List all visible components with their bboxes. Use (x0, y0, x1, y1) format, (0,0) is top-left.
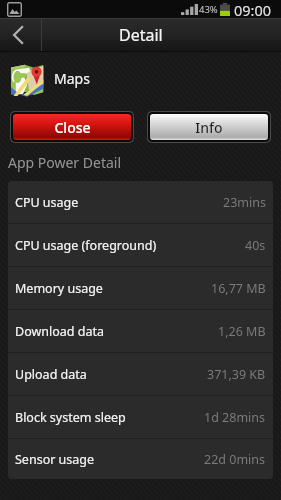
staticText: Sensor usage (15, 451, 95, 468)
button[interactable]: Info (150, 114, 268, 140)
staticText: Block system sleep (15, 409, 126, 426)
staticText: 16,77 MB (211, 280, 266, 297)
button[interactable]: Close (13, 114, 131, 140)
staticText: 09:00 (234, 0, 272, 18)
button[interactable]: Maps (0, 52, 281, 105)
button[interactable]: Sensor usage (8, 439, 273, 479)
button[interactable]: Memory usage (8, 267, 273, 310)
staticText: 43% (199, 3, 218, 16)
button[interactable]: CPU usage (8, 181, 273, 224)
staticText: Maps (54, 69, 90, 88)
button[interactable]: Download data (8, 310, 273, 353)
staticText: 40s (245, 237, 266, 254)
staticText: 371,39 KB (207, 366, 266, 383)
staticText: CPU usage (foreground) (15, 237, 157, 254)
staticText: 22d 0mins (204, 451, 266, 468)
staticText: Upload data (15, 366, 87, 383)
staticText: 1d 28mins (204, 409, 266, 426)
staticText: Memory usage (15, 280, 103, 297)
button[interactable]: Block system sleep (8, 396, 273, 439)
button[interactable]: CPU usage (foreground) (8, 224, 273, 267)
staticText: Detail (119, 24, 163, 46)
staticText: Info (195, 118, 223, 137)
staticText: CPU usage (15, 194, 79, 211)
staticText: Close (54, 118, 91, 137)
staticText: 1,26 MB (218, 323, 266, 340)
button[interactable]: Back (0, 18, 41, 52)
staticText: Download data (15, 323, 104, 340)
staticText: 23mins (223, 194, 266, 211)
staticText: App Power Detail (8, 153, 122, 172)
button[interactable]: Upload data (8, 353, 273, 396)
